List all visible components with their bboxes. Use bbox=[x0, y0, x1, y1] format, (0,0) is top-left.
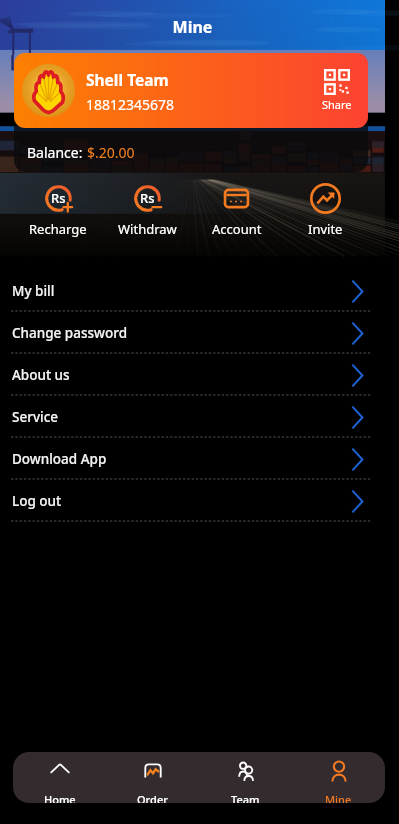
staticText: Rs bbox=[51, 189, 66, 207]
staticText: Team bbox=[231, 792, 260, 803]
button[interactable]: Rs bbox=[13, 181, 103, 240]
button[interactable]: Invite bbox=[281, 181, 370, 240]
button[interactable]: Home bbox=[13, 752, 106, 803]
staticText: Share bbox=[322, 97, 352, 112]
staticText: $.20.00 bbox=[87, 143, 135, 162]
button[interactable]: Rs bbox=[103, 181, 192, 240]
staticText: Change password bbox=[12, 324, 128, 342]
staticText: About us bbox=[12, 366, 70, 384]
staticText: My bill bbox=[12, 282, 55, 300]
staticText: Home bbox=[44, 792, 76, 803]
button[interactable]: Order bbox=[106, 752, 199, 803]
staticText: Mine bbox=[0, 16, 385, 38]
staticText: Withdraw bbox=[118, 220, 177, 238]
button[interactable]: Mine bbox=[292, 752, 385, 803]
staticText: Rs bbox=[140, 189, 155, 207]
staticText: Service bbox=[12, 408, 59, 426]
button[interactable]: Shell Team bbox=[14, 53, 368, 128]
staticText: 18812345678 bbox=[86, 95, 175, 114]
staticText: Shell Team bbox=[86, 69, 169, 90]
staticText: Order bbox=[137, 792, 168, 803]
button[interactable]: Download App bbox=[0, 438, 399, 480]
button[interactable]: Service bbox=[0, 396, 399, 438]
staticText: Download App bbox=[12, 450, 107, 468]
staticText: Recharge bbox=[29, 220, 87, 238]
staticText: Invite bbox=[308, 220, 343, 238]
button[interactable]: My bill bbox=[0, 270, 399, 312]
staticText: Account bbox=[212, 220, 262, 238]
button[interactable]: Change password bbox=[0, 312, 399, 354]
staticText: Log out bbox=[12, 492, 62, 510]
button[interactable]: About us bbox=[0, 354, 399, 396]
button[interactable]: Share bbox=[318, 65, 356, 116]
button[interactable]: Log out bbox=[0, 480, 399, 522]
staticText: Mine bbox=[325, 792, 352, 803]
button[interactable]: Account bbox=[192, 181, 281, 240]
button[interactable]: Team bbox=[199, 752, 292, 803]
staticText: Balance: bbox=[27, 143, 87, 162]
